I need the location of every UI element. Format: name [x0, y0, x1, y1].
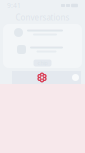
button[interactable]: Send — [72, 74, 79, 81]
staticText: 9:41 — [7, 1, 21, 10]
button[interactable] — [3, 41, 82, 58]
staticText: chip — [37, 59, 47, 67]
staticText: Conversations — [15, 12, 69, 23]
button[interactable] — [3, 24, 82, 41]
